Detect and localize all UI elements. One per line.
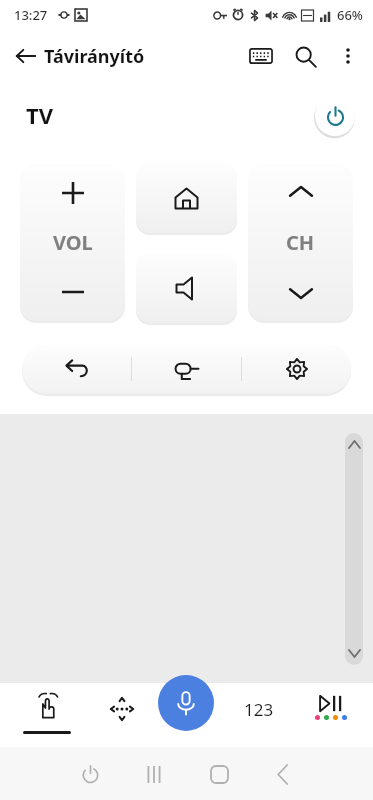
staticText: Távirányító (44, 44, 145, 69)
button[interactable]: Settings (242, 344, 351, 394)
button[interactable]: Channel (248, 164, 353, 321)
button[interactable]: Search (283, 34, 327, 78)
button[interactable]: Keyboard (239, 34, 283, 78)
button[interactable]: Back (6, 36, 46, 76)
button[interactable]: Home (199, 754, 239, 794)
button[interactable]: Power (70, 754, 110, 794)
staticText: 123 (244, 698, 274, 721)
button[interactable]: Home (136, 163, 237, 233)
button[interactable]: Touchpad (0, 414, 373, 683)
staticText: 66% (337, 6, 363, 24)
button[interactable]: Power (315, 96, 355, 136)
button[interactable]: Touchpad tab (8, 683, 86, 747)
staticText: TV (26, 100, 53, 130)
button[interactable]: 123 (222, 683, 296, 747)
button[interactable]: Mute (136, 253, 237, 323)
button[interactable]: Source (132, 344, 241, 394)
button[interactable]: More options (327, 35, 369, 77)
button[interactable]: Back (263, 754, 303, 794)
button[interactable]: Voice search (158, 675, 214, 731)
button[interactable]: D-pad (86, 683, 158, 747)
staticText: 13:27 (14, 6, 48, 24)
button[interactable]: Media controls (296, 683, 366, 747)
button[interactable]: Back (22, 344, 131, 394)
staticText: CH (286, 229, 315, 256)
staticText: VOL (53, 229, 93, 256)
button[interactable]: Volume (20, 164, 125, 321)
button[interactable]: Scroll (345, 433, 363, 665)
button[interactable]: Recents (134, 754, 174, 794)
